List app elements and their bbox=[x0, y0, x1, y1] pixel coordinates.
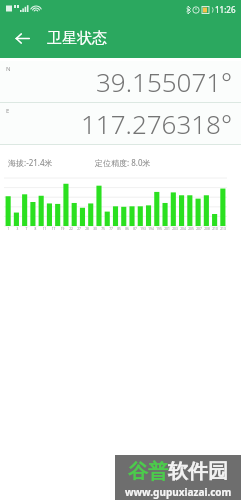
staticText: 39.155071° bbox=[96, 64, 233, 99]
staticText: 谷普 bbox=[128, 459, 168, 484]
staticText: www.gupuxiazai.com bbox=[125, 485, 232, 499]
staticText: 30 bbox=[91, 227, 99, 231]
staticText: 19 bbox=[58, 227, 67, 231]
staticText: 86 bbox=[123, 227, 131, 231]
staticText: 海拔:-21.4米 bbox=[8, 157, 53, 168]
staticText: 11:26 bbox=[215, 4, 236, 15]
staticText: E bbox=[6, 107, 10, 115]
staticText: 8 bbox=[31, 227, 40, 231]
staticText: 1 bbox=[4, 227, 13, 231]
staticText: 22 bbox=[67, 227, 75, 231]
staticText: 210 bbox=[211, 227, 219, 231]
staticText: 195 bbox=[155, 227, 163, 231]
staticText: 3 bbox=[13, 227, 22, 231]
staticText: 卫星状态 bbox=[47, 29, 107, 48]
staticText: 208 bbox=[203, 227, 211, 231]
staticText: 27 bbox=[75, 227, 83, 231]
staticText: 194 bbox=[147, 227, 155, 231]
button[interactable]: Back bbox=[6, 22, 38, 54]
staticText: 193 bbox=[139, 227, 147, 231]
staticText: 207 bbox=[195, 227, 203, 231]
button[interactable]: N bbox=[0, 61, 241, 102]
staticText: 205 bbox=[187, 227, 195, 231]
staticText: 117.276318° bbox=[81, 106, 233, 141]
staticText: 213 bbox=[219, 227, 227, 231]
staticText: 77 bbox=[107, 227, 115, 231]
staticText: 定位精度: 8.0米 bbox=[95, 157, 151, 168]
staticText: 204 bbox=[179, 227, 187, 231]
staticText: 17 bbox=[49, 227, 58, 231]
staticText: 7 bbox=[22, 227, 31, 231]
staticText: 11 bbox=[40, 227, 49, 231]
staticText: 87 bbox=[131, 227, 139, 231]
button[interactable]: E bbox=[0, 103, 241, 144]
staticText: 85 bbox=[115, 227, 123, 231]
staticText: N bbox=[6, 65, 11, 73]
staticText: 软件园 bbox=[168, 459, 228, 484]
staticText: 201 bbox=[163, 227, 171, 231]
staticText: 28 bbox=[83, 227, 91, 231]
staticText: 75 bbox=[99, 227, 107, 231]
staticText: 203 bbox=[171, 227, 179, 231]
